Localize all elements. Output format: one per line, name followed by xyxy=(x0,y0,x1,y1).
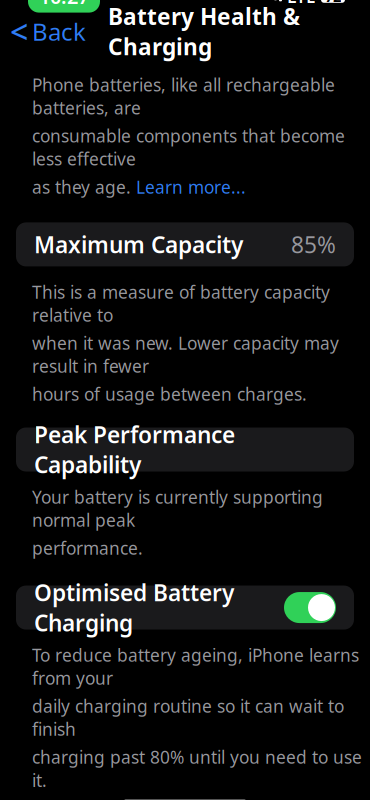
staticText: Optimised Battery Charging xyxy=(34,577,234,638)
staticText: Phone batteries, like all rechargeable b… xyxy=(32,73,335,119)
staticText: 72 xyxy=(325,0,341,6)
staticText: LTE xyxy=(287,0,316,8)
staticText: To reduce battery ageing, iPhone learns … xyxy=(32,644,359,690)
button[interactable]: Learn more... xyxy=(136,175,246,198)
staticText: performance. xyxy=(32,536,143,559)
button[interactable]: Peak Performance Capability xyxy=(16,427,354,471)
button[interactable]: Maximum Capacity xyxy=(16,222,354,266)
staticText: 10:27 xyxy=(39,0,89,10)
staticText: when it was new. Lower capacity may resu… xyxy=(32,331,339,377)
staticText: 85% xyxy=(291,229,336,259)
button[interactable]: Optimised Battery Charging xyxy=(16,586,354,630)
staticText: This is a measure of battery capacity re… xyxy=(32,280,330,326)
staticText: Battery Health & Charging xyxy=(108,1,300,61)
staticText: hours of usage between charges. xyxy=(32,382,307,405)
staticText: Your battery is currently supporting nor… xyxy=(32,485,323,531)
button[interactable]: < xyxy=(0,4,86,59)
staticText: consumable components that become less e… xyxy=(32,124,345,170)
staticText: daily charging routine so it can wait to… xyxy=(32,695,344,741)
staticText: Back xyxy=(32,15,86,47)
staticText: Learn more... xyxy=(136,175,246,198)
staticText: charging past 80% until you need to use … xyxy=(32,746,362,792)
staticText: as they age. xyxy=(32,175,136,198)
staticText: Peak Performance Capability xyxy=(34,419,235,480)
staticText: Maximum Capacity xyxy=(34,229,243,259)
staticText: < xyxy=(10,10,28,53)
